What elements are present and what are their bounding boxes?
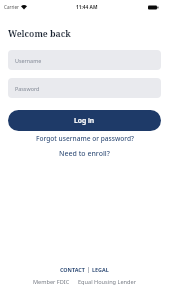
button[interactable]: Password xyxy=(8,78,161,98)
staticText: LEGAL xyxy=(92,266,109,273)
staticText: Member FDIC xyxy=(33,278,70,286)
button[interactable]: Log in xyxy=(8,110,161,131)
button[interactable]: Need to enroll? xyxy=(0,149,169,159)
staticText: Equal Housing Lender xyxy=(78,278,136,286)
staticText: Log in xyxy=(74,116,95,125)
staticText: 11:44 AM xyxy=(76,4,98,11)
button[interactable]: LEGAL xyxy=(92,266,109,273)
staticText: Need to enroll? xyxy=(59,149,110,159)
staticText: Password xyxy=(15,85,40,92)
staticText: Carrier xyxy=(4,4,19,10)
staticText: Forgot username or password? xyxy=(36,134,134,143)
staticText: Welcome back xyxy=(8,28,71,40)
button[interactable]: Forgot username or password? xyxy=(0,134,169,143)
staticText: Username xyxy=(15,57,42,64)
staticText: CONTACT xyxy=(60,266,85,273)
button[interactable]: CONTACT xyxy=(60,266,85,273)
button[interactable]: Username xyxy=(8,50,161,70)
